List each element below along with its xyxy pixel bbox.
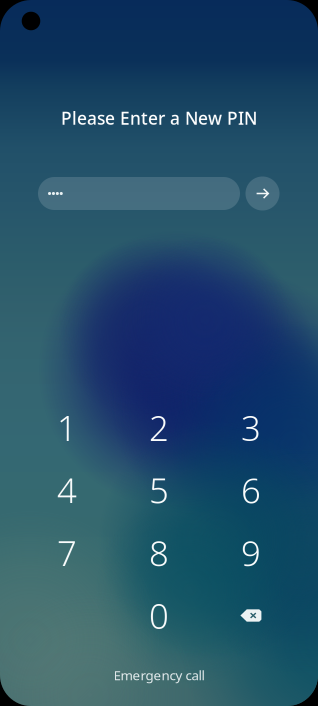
button[interactable]: 1	[23, 397, 111, 457]
staticText: 8	[149, 530, 169, 576]
staticText: Please Enter a New PIN	[61, 106, 257, 129]
staticText: 2	[149, 404, 169, 450]
staticText: 6	[241, 467, 261, 513]
button[interactable]: 3	[207, 397, 295, 457]
staticText: 9	[241, 530, 261, 576]
button[interactable]: 7	[23, 523, 111, 583]
staticText: 0	[149, 592, 169, 638]
staticText: 7	[57, 530, 77, 576]
staticText: 4	[57, 467, 77, 513]
button[interactable]: Emergency call	[99, 664, 219, 686]
staticText: 5	[149, 467, 169, 513]
staticText: 1	[57, 404, 77, 450]
staticText: 3	[241, 404, 261, 450]
button[interactable]: Delete	[207, 585, 295, 645]
button[interactable]: 0	[115, 585, 203, 645]
button[interactable]: 4	[23, 460, 111, 520]
button[interactable]: 8	[115, 523, 203, 583]
button[interactable]: 2	[115, 397, 203, 457]
button[interactable]: 9	[207, 523, 295, 583]
button[interactable]: Submit PIN	[245, 176, 279, 210]
staticText: Emergency call	[113, 666, 204, 684]
button[interactable]: 5	[115, 460, 203, 520]
button[interactable]: 6	[207, 460, 295, 520]
